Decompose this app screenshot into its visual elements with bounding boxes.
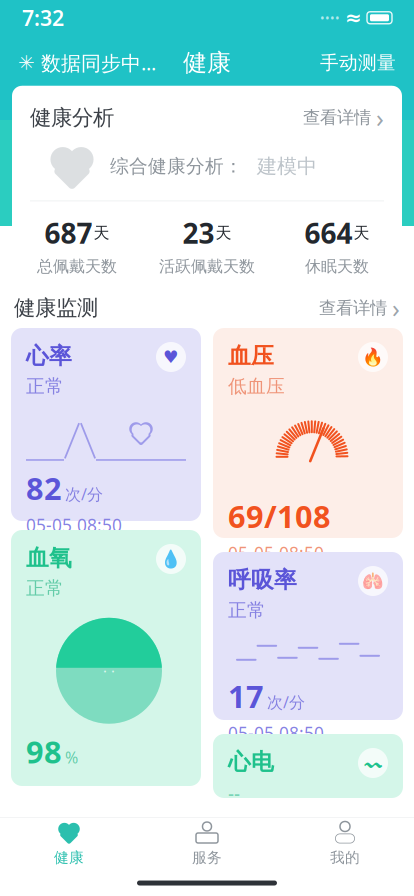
staticText: 休眠天数 xyxy=(305,257,369,276)
staticText: 天 xyxy=(215,223,231,243)
staticText: 🫁 xyxy=(362,571,384,591)
staticText: 活跃佩戴天数 xyxy=(159,257,255,276)
staticText: ≈ xyxy=(345,6,362,29)
button[interactable]: 查看详情 xyxy=(303,101,384,134)
staticText: 💧 xyxy=(160,549,182,569)
staticText: 我的 xyxy=(330,848,360,866)
button[interactable]: 血氧 xyxy=(11,530,201,786)
button[interactable]: 手动测量 xyxy=(320,51,396,74)
staticText: 健康监测 xyxy=(14,295,98,321)
staticText: 98 xyxy=(26,731,62,772)
staticText: 05-05 08:50 xyxy=(228,541,324,564)
button[interactable]: 心电 xyxy=(213,734,403,798)
staticText: 服务 xyxy=(192,848,222,866)
staticText: 总佩戴天数 xyxy=(37,257,117,276)
staticText: •••• xyxy=(320,10,340,26)
staticText: 低血压 xyxy=(228,375,285,398)
button[interactable]: 血压 xyxy=(213,328,403,538)
staticText: › xyxy=(376,101,384,134)
staticText: 664 xyxy=(304,214,352,252)
staticText: 23 xyxy=(182,214,214,252)
staticText: 查看详情 xyxy=(319,297,387,319)
staticText: 🔥 xyxy=(362,347,384,367)
staticText: 687 xyxy=(44,214,92,252)
button[interactable]: 我的 xyxy=(276,818,414,870)
staticText: 查看详情 xyxy=(303,107,371,128)
staticText: 呼吸率 xyxy=(228,566,297,594)
staticText: 05-05 08:50 xyxy=(228,721,324,744)
staticText: 天 xyxy=(93,223,109,243)
staticText: 〰 xyxy=(364,751,381,775)
staticText: 综合健康分析： xyxy=(110,155,243,178)
staticText: 心电 xyxy=(228,748,274,776)
staticText: 手动测量 xyxy=(320,51,396,74)
staticText: 健康 xyxy=(54,848,84,866)
staticText: ✳ xyxy=(18,51,35,74)
button[interactable]: 心率 xyxy=(11,328,201,521)
button[interactable]: ✳ xyxy=(18,49,156,76)
staticText: 7:32 xyxy=(22,4,64,32)
staticText: ♥ xyxy=(163,347,179,367)
staticText: · · xyxy=(103,661,115,680)
staticText: 05-05 08:50 xyxy=(26,513,122,536)
staticText: 血压 xyxy=(228,342,274,370)
button[interactable]: 服务 xyxy=(138,818,276,870)
staticText: 健康分析 xyxy=(30,104,114,131)
staticText: 数据同步中... xyxy=(41,49,156,76)
staticText: 次/分 xyxy=(267,691,305,713)
staticText: › xyxy=(392,291,400,325)
staticText: 次/分 xyxy=(65,483,103,505)
staticText: 建模中 xyxy=(257,154,317,179)
staticText: % xyxy=(65,747,78,768)
staticText: 心率 xyxy=(26,342,72,370)
staticText: 正常 xyxy=(26,375,64,398)
staticText: 血氧 xyxy=(26,544,72,572)
button[interactable]: 呼吸率 xyxy=(213,552,403,720)
button[interactable]: 健康 xyxy=(0,818,138,870)
staticText: 健康 xyxy=(183,48,231,77)
staticText: 正常 xyxy=(228,599,266,622)
staticText: 17 xyxy=(228,676,264,716)
staticText: 天 xyxy=(353,223,369,243)
staticText: 69/108 xyxy=(228,496,331,536)
button[interactable]: 查看详情 xyxy=(319,291,400,325)
staticText: -- xyxy=(228,781,240,806)
staticText: 82 xyxy=(26,468,62,508)
staticText: 正常 xyxy=(26,577,64,600)
